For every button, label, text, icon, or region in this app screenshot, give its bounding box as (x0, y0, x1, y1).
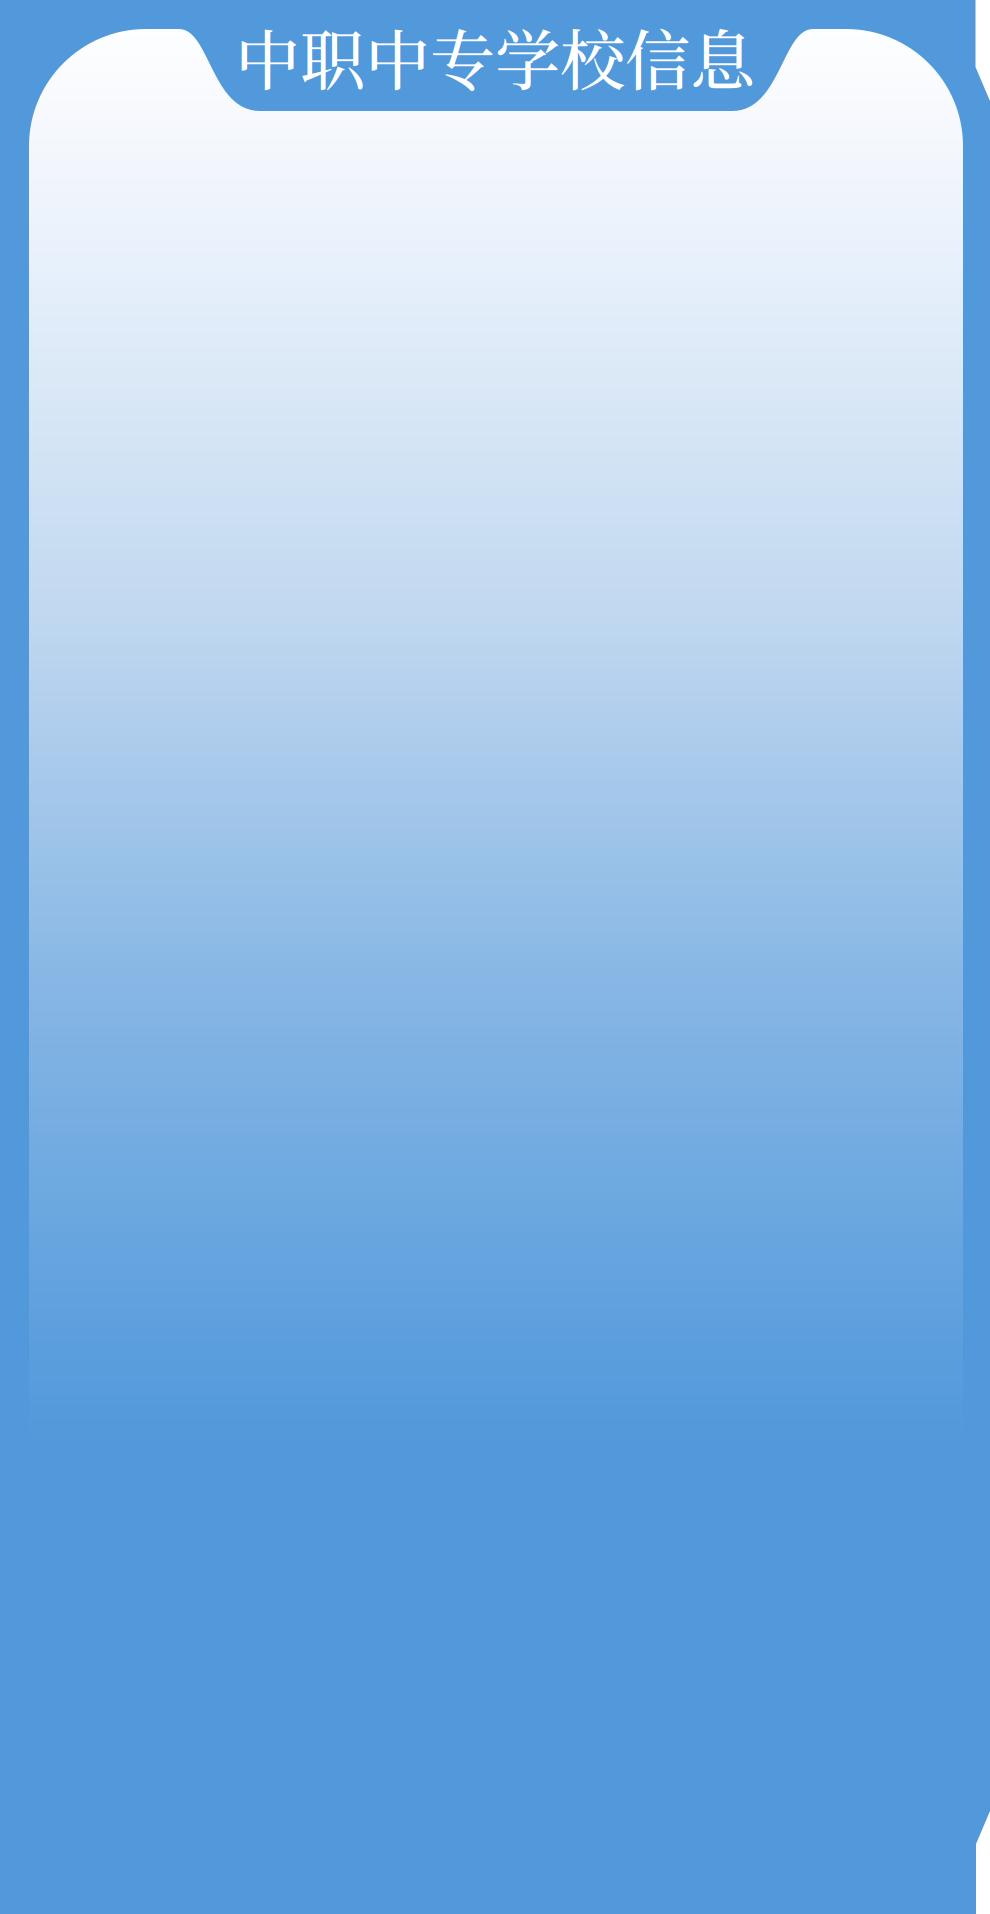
staticText: 中职中专学校信息 (235, 9, 755, 103)
button[interactable]: 中职中专学校信息 (0, 0, 990, 112)
